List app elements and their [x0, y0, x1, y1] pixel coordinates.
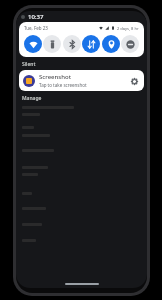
button[interactable]: Settings — [128, 75, 140, 87]
button[interactable]: Screenshot — [19, 70, 144, 91]
button[interactable]: Mobile data — [82, 35, 100, 53]
button[interactable]: Location — [102, 35, 120, 53]
staticText: Tap to take screenshot — [39, 82, 87, 88]
staticText: Silent — [22, 61, 36, 68]
staticText: 2 days, 8 hr — [117, 26, 139, 31]
button[interactable]: Flashlight — [43, 35, 61, 53]
button[interactable]: Bluetooth — [63, 35, 81, 53]
button[interactable]: Do not disturb — [121, 35, 139, 53]
staticText: Manage — [22, 95, 42, 102]
button[interactable]: Wi-Fi — [24, 35, 42, 53]
staticText: 10:37 — [28, 13, 44, 21]
staticText: Screenshot — [39, 73, 71, 81]
staticText: Tue, Feb 23 — [24, 25, 48, 31]
